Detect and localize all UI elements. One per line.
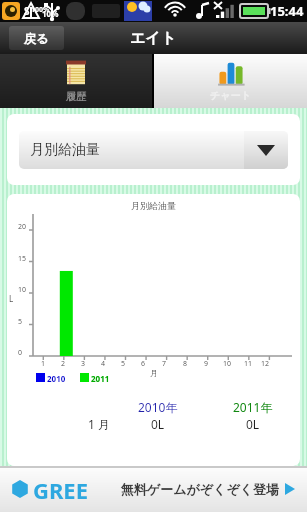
staticText: 無料ゲームがぞくぞく登場	[120, 481, 279, 497]
staticText: 2011年	[233, 399, 273, 415]
staticText: 15	[18, 254, 27, 264]
button[interactable]: 戻る	[9, 26, 64, 50]
staticText: 0L	[246, 416, 260, 432]
staticText: 11	[244, 359, 253, 369]
staticText: 12	[261, 359, 270, 369]
staticText: 0L	[151, 416, 165, 432]
staticText: チャート	[210, 89, 251, 102]
staticText: 20	[18, 222, 27, 232]
staticText: 5	[121, 359, 126, 369]
staticText: 月別給油量	[30, 141, 244, 159]
staticText: 7	[162, 359, 167, 369]
staticText: 1 月	[88, 416, 110, 432]
staticText: 2010	[47, 373, 66, 384]
staticText: 6	[141, 359, 146, 369]
staticText: 15:44	[270, 2, 304, 20]
staticText: 5	[18, 317, 23, 327]
staticText: 2010年	[138, 399, 178, 415]
staticText: 1	[41, 359, 46, 369]
staticText: 100%	[31, 5, 50, 15]
button[interactable]: 月別給油量	[19, 131, 288, 169]
staticText: 10	[223, 359, 232, 369]
staticText: 10%	[42, 8, 59, 19]
staticText: 月	[150, 368, 158, 378]
staticText: 戻る	[24, 31, 49, 46]
staticText: 8	[183, 359, 188, 369]
button[interactable]: GREE	[0, 466, 307, 512]
staticText: L	[9, 293, 14, 304]
staticText: 月別給油量	[131, 200, 176, 211]
staticText: 0	[18, 348, 23, 358]
staticText: 2011	[91, 373, 110, 384]
staticText: 10	[18, 285, 27, 295]
staticText: 4	[101, 359, 106, 369]
staticText: 3	[81, 359, 86, 369]
button[interactable]: 履歴	[0, 54, 152, 108]
staticText: エイト	[130, 29, 177, 48]
staticText: 9	[204, 359, 209, 369]
button[interactable]: チャート	[154, 54, 307, 108]
staticText: GREE	[33, 475, 89, 505]
staticText: 履歴	[66, 90, 86, 103]
staticText: 2	[61, 359, 66, 369]
staticText: S	[24, 4, 30, 18]
